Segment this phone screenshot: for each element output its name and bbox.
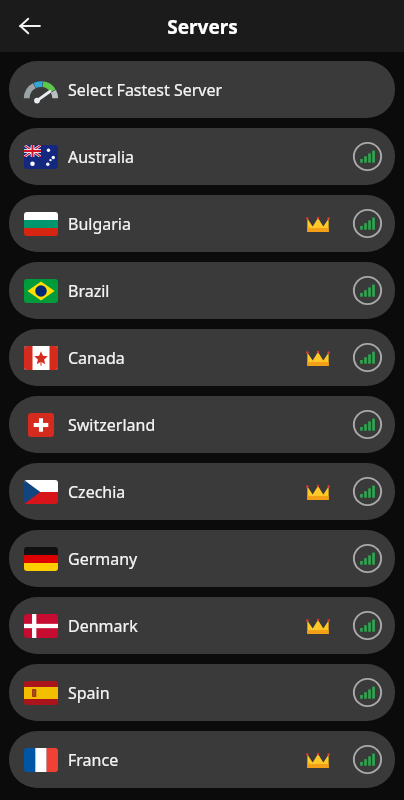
staticText: Czechia: [68, 481, 126, 503]
staticText: France: [68, 749, 119, 771]
staticText: Germany: [68, 548, 138, 570]
staticText: Servers: [167, 14, 238, 40]
button[interactable]: Back: [8, 4, 52, 48]
button[interactable]: France: [9, 731, 395, 788]
staticText: Spain: [68, 682, 110, 704]
staticText: Switzerland: [68, 414, 156, 436]
staticText: Australia: [68, 146, 135, 168]
staticText: Brazil: [68, 280, 110, 302]
staticText: Select Fastest Server: [68, 79, 223, 101]
button[interactable]: Germany: [9, 530, 395, 587]
button[interactable]: Spain: [9, 664, 395, 721]
button[interactable]: Denmark: [9, 597, 395, 654]
button[interactable]: Czechia: [9, 463, 395, 520]
staticText: Bulgaria: [68, 213, 131, 235]
staticText: Canada: [68, 347, 125, 369]
button[interactable]: Australia: [9, 128, 395, 185]
button[interactable]: Brazil: [9, 262, 395, 319]
button[interactable]: Select Fastest Server: [9, 61, 395, 118]
button[interactable]: Bulgaria: [9, 195, 395, 252]
button[interactable]: Switzerland: [9, 396, 395, 453]
button[interactable]: Canada: [9, 329, 395, 386]
staticText: Denmark: [68, 615, 138, 637]
